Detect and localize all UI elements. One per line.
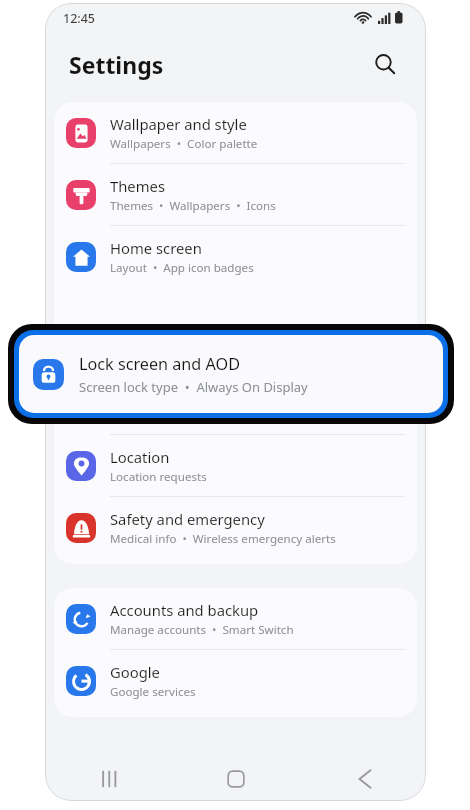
- staticText: Safety and emergency: [110, 509, 265, 529]
- staticText: Wallpapers • Color palette: [110, 136, 258, 152]
- button[interactable]: Wallpaper and style: [54, 102, 417, 163]
- staticText: Settings: [69, 49, 164, 80]
- staticText: Themes: [110, 176, 165, 196]
- staticText: Location requests: [110, 469, 207, 485]
- staticText: Home screen: [110, 238, 202, 258]
- staticText: Medical info • Wireless emergency alerts: [110, 531, 336, 547]
- staticText: Location: [110, 447, 170, 467]
- button[interactable]: Recent apps: [45, 757, 172, 801]
- button[interactable]: Search: [366, 45, 404, 83]
- staticText: Manage accounts • Smart Switch: [110, 622, 294, 638]
- staticText: Themes • Wallpapers • Icons: [110, 198, 276, 214]
- button[interactable]: Home: [172, 757, 299, 801]
- button[interactable]: Accounts and backup: [54, 588, 417, 649]
- button[interactable]: Themes: [54, 164, 417, 225]
- button[interactable]: Safety and emergency: [54, 497, 417, 558]
- button[interactable]: Google: [54, 650, 417, 711]
- button[interactable]: Security and privacy: [54, 373, 417, 434]
- staticText: 12:45: [63, 10, 96, 27]
- button[interactable]: Back: [299, 757, 426, 801]
- staticText: Accounts and backup: [110, 600, 259, 620]
- button[interactable]: Home screen: [54, 226, 417, 287]
- staticText: Wallpaper and style: [110, 114, 247, 134]
- staticText: Biometrics • Permission manager: [110, 407, 298, 423]
- button[interactable]: Location: [54, 435, 417, 496]
- staticText: Security and privacy: [110, 385, 250, 405]
- button[interactable]: Lock screen and AOD: [19, 335, 443, 413]
- staticText: Google: [110, 662, 160, 682]
- staticText: Google services: [110, 684, 196, 700]
- staticText: Lock screen and AOD: [79, 353, 240, 375]
- staticText: Screen lock type • Always On Display: [79, 378, 308, 396]
- staticText: Layout • App icon badges: [110, 260, 254, 276]
